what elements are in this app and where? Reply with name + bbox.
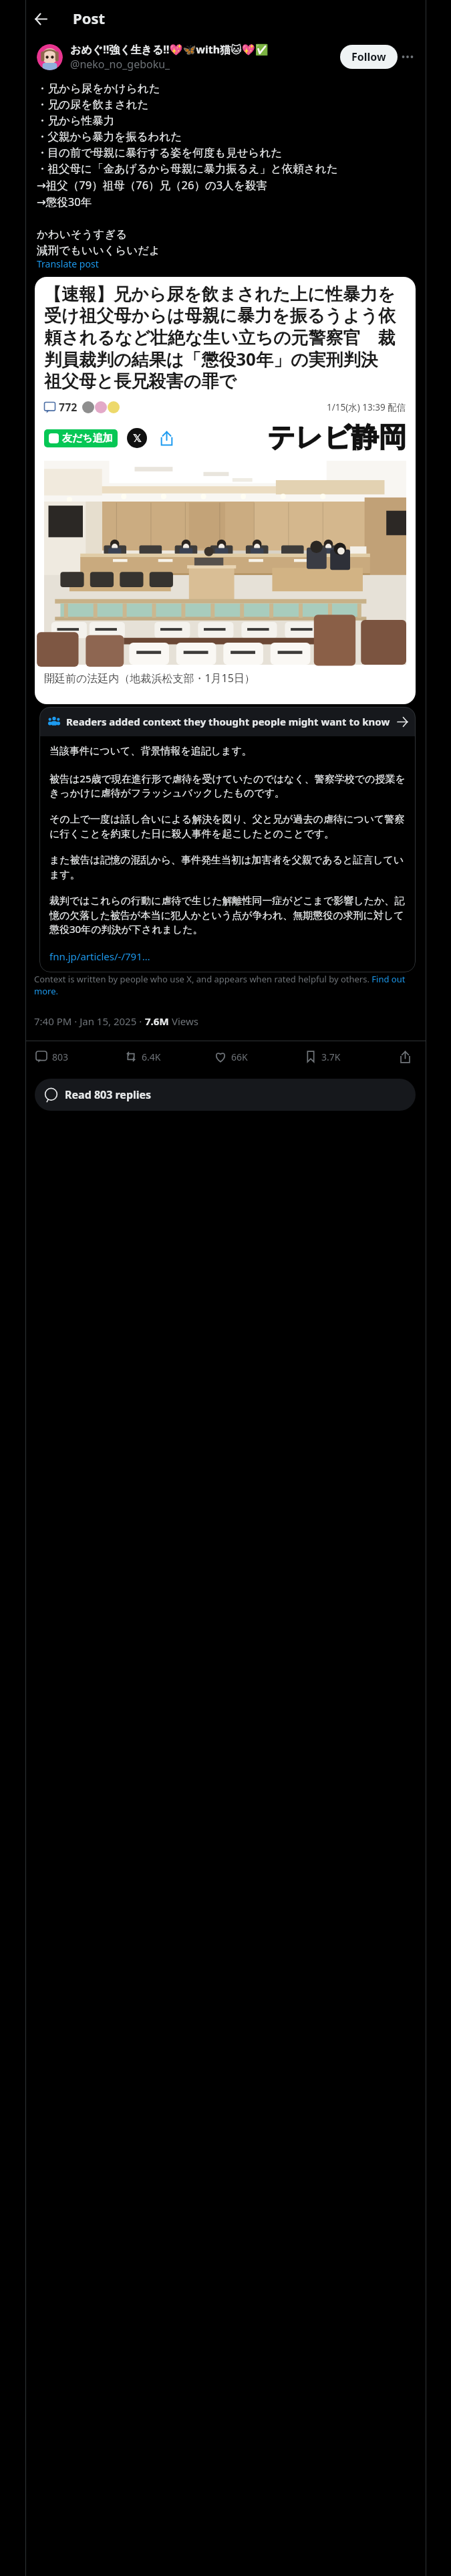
staticText: Post: [73, 8, 106, 28]
button[interactable]: Share on X: [127, 428, 147, 448]
button[interactable]: Share post: [395, 1047, 415, 1067]
staticText: @neko_no_geboku_: [70, 57, 170, 72]
button[interactable]: Back: [28, 6, 53, 31]
staticText: 当該事件について、背景情報を追記します。: [49, 745, 252, 758]
staticText: 𝕏: [133, 432, 142, 445]
button[interactable]: Share: [156, 428, 176, 448]
button[interactable]: Translate post: [37, 257, 99, 270]
button[interactable]: fnn.jp/articles/-/791…: [49, 950, 150, 963]
staticText: 裁判ではこれらの行動に虐待で生じた解離性同一症がどこまで影響したか、記憶の欠落し…: [49, 895, 406, 936]
staticText: また被告は記憶の混乱から、事件発生当初は加害者を父親であると証言しています。: [49, 854, 406, 881]
button[interactable]: Follow: [340, 45, 398, 69]
staticText: ・兄から尿をかけられた ・兄の尿を飲まされた ・兄から性暴力 ・父親から暴力を振…: [37, 82, 338, 257]
button[interactable]: Reply: [35, 1041, 125, 1072]
staticText: 開廷前の法廷内（地裁浜松支部・1月15日）: [44, 671, 255, 685]
button[interactable]: Repost: [125, 1041, 214, 1072]
staticText: Readers added context they thought peopl…: [66, 715, 394, 728]
button[interactable]: Context is written by people who use X, …: [34, 973, 415, 997]
staticText: テレビ静岡: [267, 421, 406, 455]
staticText: その上で一度は話し合いによる解決を図り、父と兄が過去の虐待について警察に行くこと…: [49, 813, 406, 840]
staticText: 友だち追加: [62, 432, 113, 445]
button[interactable]: Bookmark: [305, 1041, 395, 1072]
staticText: 6.4K: [142, 1051, 161, 1063]
staticText: Follow: [351, 49, 386, 64]
staticText: 772: [59, 400, 78, 415]
button[interactable]: 【速報】兄から尿を飲まされた上に性暴力を受け祖父母からは母親に暴力を振るうよう依…: [35, 277, 416, 704]
button[interactable]: Like: [214, 1041, 305, 1072]
button[interactable]: Readers added context they thought peopl…: [39, 707, 416, 972]
staticText: 3.7K: [321, 1051, 341, 1063]
staticText: 1/15(水) 13:39 配信: [327, 401, 406, 413]
staticText: 7.6M: [145, 1014, 169, 1028]
staticText: 66K: [231, 1051, 248, 1063]
button[interactable]: 友だち追加: [44, 429, 118, 447]
staticText: 7:40 PM · Jan 15, 2025 ·: [34, 1014, 145, 1028]
staticText: おめぐ‼強く生きる‼💖🦋with猫🐱💖✅: [70, 42, 269, 57]
staticText: 【速報】兄から尿を飲まされた上に性暴力を受け祖父母からは母親に暴力を振るうよう依…: [44, 284, 406, 393]
staticText: Views: [169, 1014, 198, 1028]
button[interactable]: More options: [398, 47, 418, 67]
staticText: 被告は25歳で現在進行形で虐待を受けていたのではなく、警察学校での授業をきっかけ…: [49, 772, 406, 799]
staticText: 803: [52, 1051, 69, 1063]
button[interactable]: Profile picture: [37, 44, 63, 70]
button[interactable]: Read 803 replies: [35, 1079, 416, 1111]
staticText: Read 803 replies: [65, 1087, 152, 1102]
